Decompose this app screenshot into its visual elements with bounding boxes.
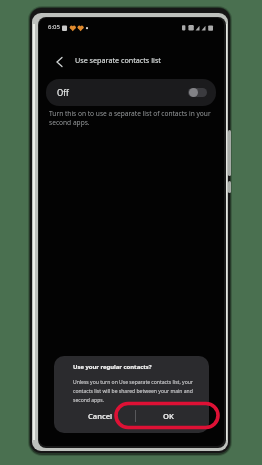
button[interactable]: Cancel [79,406,122,425]
staticText: Off [57,87,69,98]
staticText: contacts list will be shared between you… [73,388,193,395]
button[interactable]: Off [46,79,216,106]
staticText: OK [163,411,174,421]
staticText: Unless you turn on Use separate contacts… [73,379,193,386]
button[interactable] [56,57,63,67]
staticText: Cancel [88,411,113,421]
staticText: second apps. [49,118,90,127]
staticText: 6:05 [48,23,60,31]
staticText: Use your regular contacts? [73,363,152,371]
button[interactable]: OK [147,406,190,425]
staticText: Use separate contacts list [75,55,161,65]
staticText: second apps. [73,397,105,404]
staticText: Turn this on to use a separate list of c… [49,109,211,118]
